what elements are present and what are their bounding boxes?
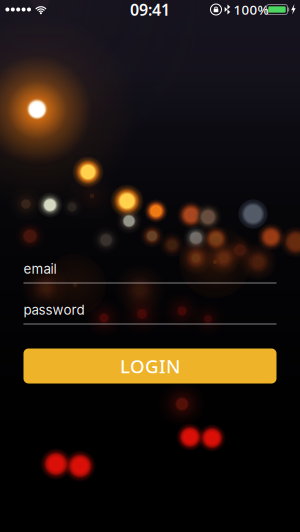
- button[interactable]: email: [23, 257, 276, 281]
- staticText: 100%: [233, 1, 268, 18]
- button[interactable]: LOGIN: [23, 348, 276, 383]
- staticText: password: [23, 302, 84, 318]
- staticText: 09:41: [130, 0, 170, 20]
- staticText: email: [23, 261, 56, 277]
- staticText: LOGIN: [120, 354, 180, 378]
- button[interactable]: password: [23, 298, 276, 322]
